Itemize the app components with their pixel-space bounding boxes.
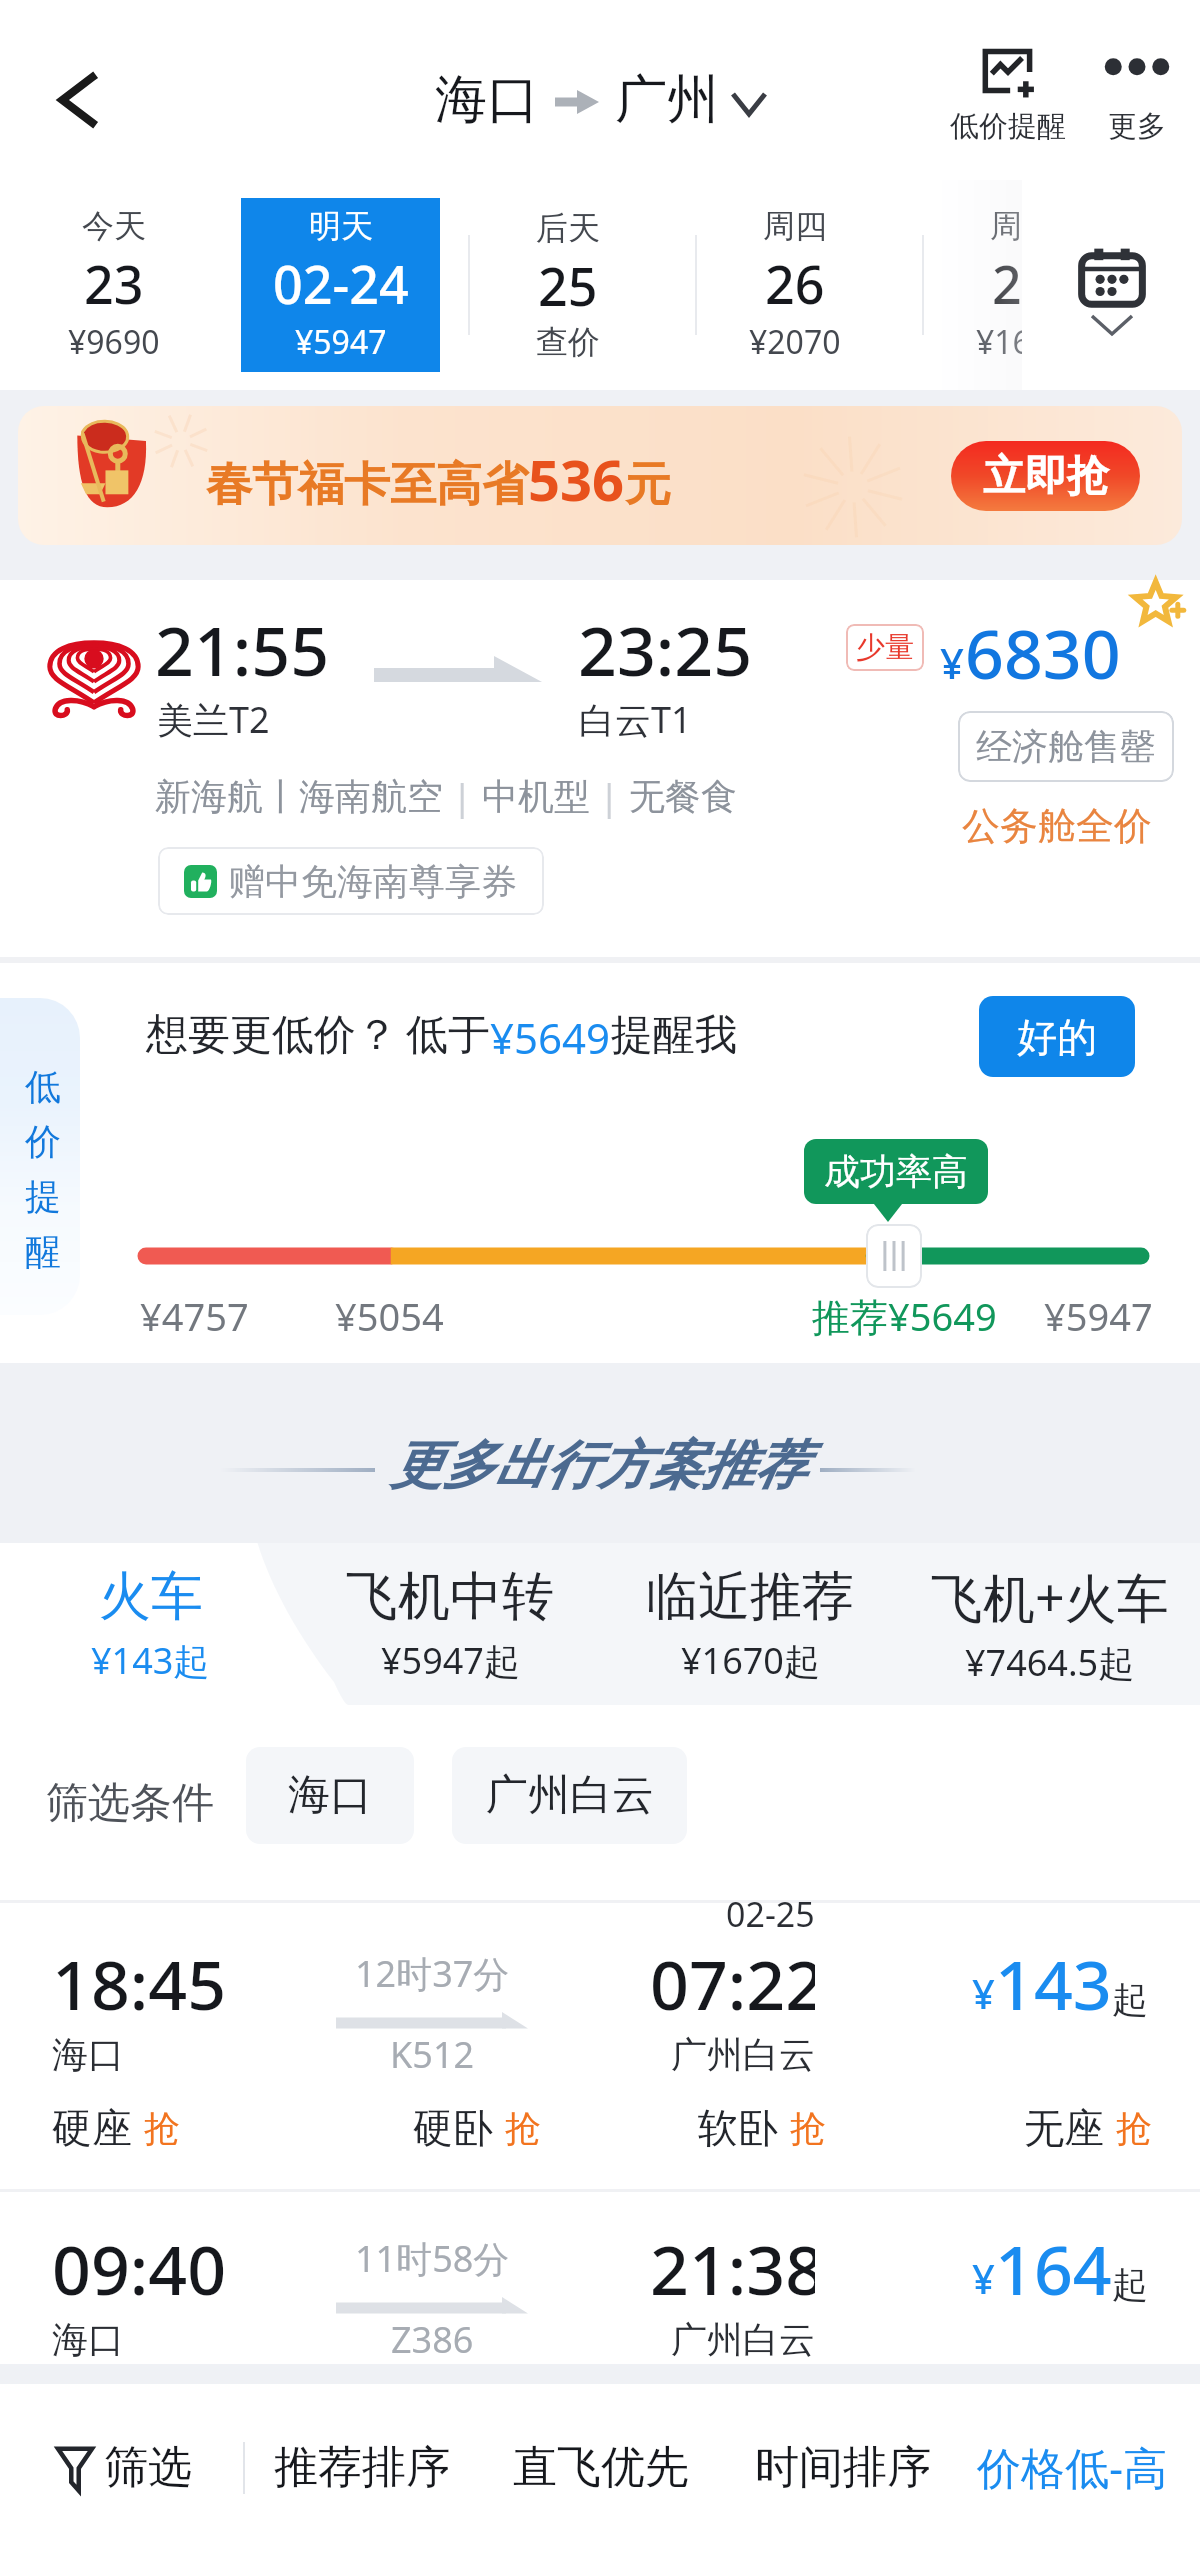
staticText: ¥5947	[1044, 1290, 1153, 1342]
staticText: 美兰T2	[157, 695, 270, 744]
button[interactable]: 09:40	[0, 2192, 1200, 2364]
staticText: 提醒我	[611, 1009, 737, 1062]
button[interactable]: 海口	[246, 1747, 414, 1844]
button[interactable]: 广州白云	[452, 1747, 687, 1844]
staticText: 价	[25, 1119, 61, 1164]
staticText: 价格低-高	[977, 2437, 1168, 2497]
staticText: 18:45	[52, 1937, 227, 2030]
button[interactable]: 18:45	[0, 1903, 1200, 2189]
staticText: 经济舱售罄	[976, 724, 1156, 769]
staticText: 23:25	[578, 603, 753, 696]
staticText: Z386	[391, 2315, 474, 2364]
button[interactable]: 临近推荐	[600, 1543, 900, 1705]
staticText: 12时37分	[355, 1949, 510, 1998]
staticText: 推荐排序	[274, 2440, 450, 2495]
staticText: ¥1670起	[681, 1636, 820, 1685]
button[interactable]: 今天	[14, 198, 213, 372]
staticText: 时间排序	[755, 2440, 931, 2495]
staticText: ¥1690	[976, 320, 1022, 364]
button[interactable]: 明天	[241, 198, 440, 372]
staticText: 飞机+火车	[931, 1561, 1169, 1632]
staticText: 软卧	[698, 2103, 778, 2153]
staticText: 21:38	[650, 2222, 815, 2315]
staticText: 536	[528, 441, 625, 517]
staticText: 公务舱全价	[962, 802, 1152, 850]
button[interactable]: 火车	[0, 1543, 300, 1705]
staticText: 抢	[505, 2106, 541, 2151]
staticText: 02-25	[726, 1891, 815, 1937]
staticText: 元	[625, 456, 671, 514]
button[interactable]: 周五	[922, 198, 1022, 372]
staticText: 无座	[1024, 2103, 1104, 2153]
staticText: 更多出行方案推荐	[390, 1433, 806, 1499]
button[interactable]: 低	[0, 998, 80, 1315]
staticText: ¥	[972, 2251, 995, 2305]
staticText: 明天	[309, 206, 373, 246]
staticText: 21:55	[155, 603, 330, 696]
staticText: 广州白云	[486, 1769, 654, 1822]
staticText: 广州白云	[671, 2317, 815, 2362]
staticText: K512	[390, 2030, 475, 2079]
staticText: 临近推荐	[646, 1564, 854, 1630]
button[interactable]: 更多	[1104, 44, 1170, 145]
staticText: 硬座	[52, 2103, 132, 2153]
button[interactable]: 好的	[979, 996, 1135, 1077]
staticText: 推荐¥5649	[812, 1290, 997, 1342]
staticText: ¥5649	[490, 1009, 611, 1066]
staticText: ¥2070	[749, 320, 841, 364]
button[interactable]: 低价提醒	[950, 44, 1066, 145]
staticText: ¥	[940, 634, 965, 691]
button[interactable]: 飞机中转	[300, 1543, 600, 1705]
staticText: ¥5054	[335, 1290, 444, 1342]
button[interactable]: 春节福卡至高省	[18, 406, 1182, 545]
staticText: 中机型	[482, 774, 590, 819]
staticText: 筛选条件	[46, 1777, 214, 1830]
staticText: 硬卧	[413, 2103, 493, 2153]
staticText: 07:22	[650, 1937, 815, 2030]
button[interactable]: Price slider	[866, 1224, 922, 1288]
staticText: 23	[84, 248, 144, 319]
button[interactable]: Back	[34, 53, 128, 147]
staticText: ¥5947起	[381, 1636, 520, 1685]
staticText: 6830	[965, 606, 1121, 699]
staticText: 抢	[144, 2106, 180, 2151]
staticText: ¥	[972, 1966, 995, 2020]
staticText: 醒	[25, 1229, 61, 1274]
staticText: 白云T1	[579, 695, 692, 744]
staticText: 后天	[536, 208, 600, 248]
staticText: 抢	[790, 2106, 826, 2151]
staticText: |	[590, 772, 629, 821]
button[interactable]: 时间排序	[745, 2384, 941, 2550]
staticText: 想要更低价？	[146, 1009, 398, 1062]
staticText: 立即抢	[983, 450, 1109, 503]
staticText: 抢	[1116, 2106, 1152, 2151]
button[interactable]: 周四	[695, 198, 894, 372]
button[interactable]: 价格低-高	[972, 2384, 1172, 2550]
button[interactable]: 21:55	[0, 580, 1200, 957]
button[interactable]: 飞机+火车	[900, 1543, 1200, 1705]
button[interactable]: 后天	[468, 198, 667, 372]
staticText: 09:40	[52, 2222, 227, 2315]
staticText: 今天	[82, 206, 146, 246]
button[interactable]: 赠中免海南尊享券	[158, 847, 544, 915]
button[interactable]: Calendar	[1023, 180, 1200, 390]
staticText: 26	[765, 248, 825, 319]
staticText: |	[443, 772, 482, 821]
button[interactable]: 筛选	[58, 2384, 228, 2550]
button[interactable]: 海口	[435, 67, 765, 133]
button[interactable]: 推荐排序	[264, 2384, 460, 2550]
staticText: 低价提醒	[950, 108, 1066, 145]
staticText: 广州白云	[671, 2032, 815, 2077]
staticText: 新海航丨海南航空	[155, 774, 443, 819]
staticText: 25	[538, 250, 598, 321]
staticText: 少量	[856, 629, 914, 666]
button[interactable]: 直飞优先	[503, 2384, 699, 2550]
staticText: 164	[995, 2222, 1112, 2315]
button[interactable]: 立即抢	[951, 441, 1140, 511]
staticText: 飞机中转	[346, 1564, 554, 1630]
staticText: 直飞优先	[513, 2440, 689, 2495]
staticText: 春节福卡至高省	[206, 456, 528, 514]
staticText: 11时58分	[355, 2234, 510, 2283]
staticText: 海口	[288, 1769, 372, 1822]
staticText: 海口	[52, 2032, 124, 2077]
